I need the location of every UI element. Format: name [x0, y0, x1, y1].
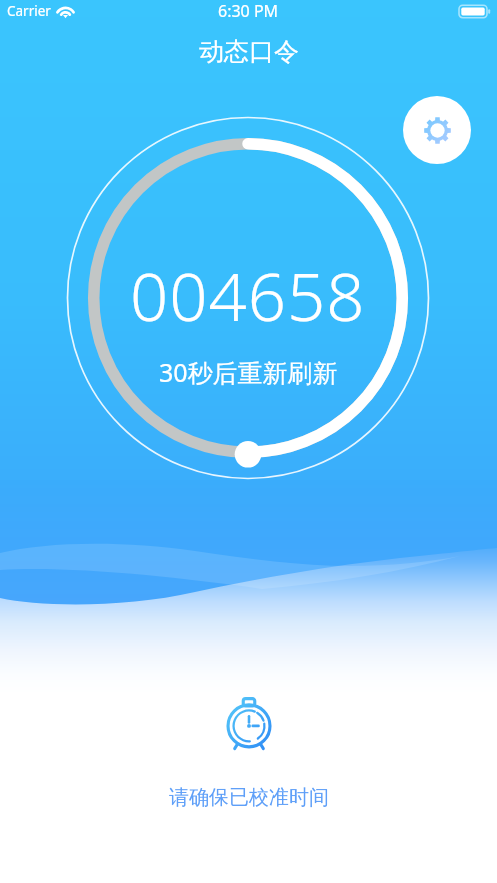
- staticText: 请确保已校准时间: [169, 785, 329, 810]
- staticText: 30秒后重新刷新: [159, 355, 338, 389]
- staticText: 6:30 PM: [218, 0, 279, 22]
- staticText: 动态口令: [199, 36, 299, 67]
- staticText: 004658: [130, 249, 366, 340]
- button[interactable]: Settings: [403, 96, 471, 164]
- staticText: Carrier: [7, 2, 51, 20]
